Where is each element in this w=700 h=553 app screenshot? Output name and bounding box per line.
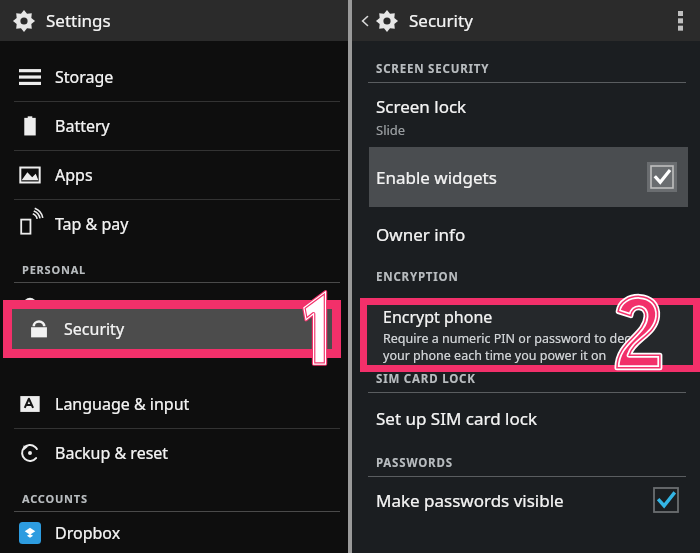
button[interactable]: Set up SIM card lock bbox=[352, 393, 700, 441]
button[interactable]: Enable widgets bbox=[369, 147, 688, 207]
staticText: ENCRYPTION bbox=[376, 269, 459, 285]
button[interactable]: Screen lock bbox=[352, 83, 700, 145]
staticText: ACCOUNTS bbox=[22, 491, 88, 506]
button[interactable]: Storage bbox=[0, 53, 348, 101]
button[interactable]: Dropbox bbox=[0, 512, 348, 553]
button[interactable]: Make passwords visible bbox=[352, 477, 700, 523]
staticText: Security bbox=[409, 9, 473, 32]
staticText: Dropbox bbox=[55, 522, 121, 544]
other: Back bbox=[358, 14, 372, 28]
button[interactable]: More options bbox=[660, 1, 700, 41]
staticText: Security bbox=[64, 318, 125, 340]
button[interactable]: Owner info bbox=[352, 211, 700, 257]
staticText: Settings bbox=[46, 9, 111, 32]
staticText: Owner info bbox=[376, 223, 466, 246]
staticText: Require a numeric PIN or password to dec bbox=[383, 330, 631, 347]
button[interactable]: Battery bbox=[0, 102, 348, 150]
staticText: Battery bbox=[55, 115, 110, 137]
button[interactable]: Encrypt phone bbox=[360, 298, 700, 372]
staticText: Slide bbox=[376, 121, 406, 139]
button[interactable]: Location bbox=[0, 283, 348, 331]
other: Settings bbox=[12, 9, 36, 33]
button[interactable]: Backup & reset bbox=[0, 429, 348, 477]
button[interactable]: Apps bbox=[0, 151, 348, 199]
staticText: Tap & pay bbox=[55, 213, 129, 235]
staticText: Set up SIM card lock bbox=[376, 407, 537, 430]
staticText: your phone each time you power it on bbox=[383, 347, 607, 364]
button[interactable]: Back bbox=[352, 0, 700, 41]
staticText: Backup & reset bbox=[55, 442, 169, 464]
staticText: Location bbox=[55, 296, 120, 318]
staticText: SIM CARD LOCK bbox=[376, 371, 476, 387]
button[interactable]: Language & input bbox=[0, 380, 348, 428]
staticText: PERSONAL bbox=[22, 262, 87, 277]
staticText: Encrypt phone bbox=[383, 306, 493, 328]
staticText: Enable widgets bbox=[376, 166, 497, 189]
staticText: Language & input bbox=[55, 393, 190, 415]
button[interactable]: Settings bbox=[0, 0, 348, 41]
button[interactable]: Tap & pay bbox=[0, 200, 348, 248]
button[interactable]: Security bbox=[3, 300, 341, 358]
staticText: Apps bbox=[55, 164, 93, 186]
staticText: SCREEN SECURITY bbox=[376, 61, 490, 77]
staticText: Make passwords visible bbox=[376, 489, 564, 512]
staticText: Screen lock bbox=[376, 95, 467, 118]
staticText: PASSWORDS bbox=[376, 455, 453, 471]
staticText: Storage bbox=[55, 66, 114, 88]
